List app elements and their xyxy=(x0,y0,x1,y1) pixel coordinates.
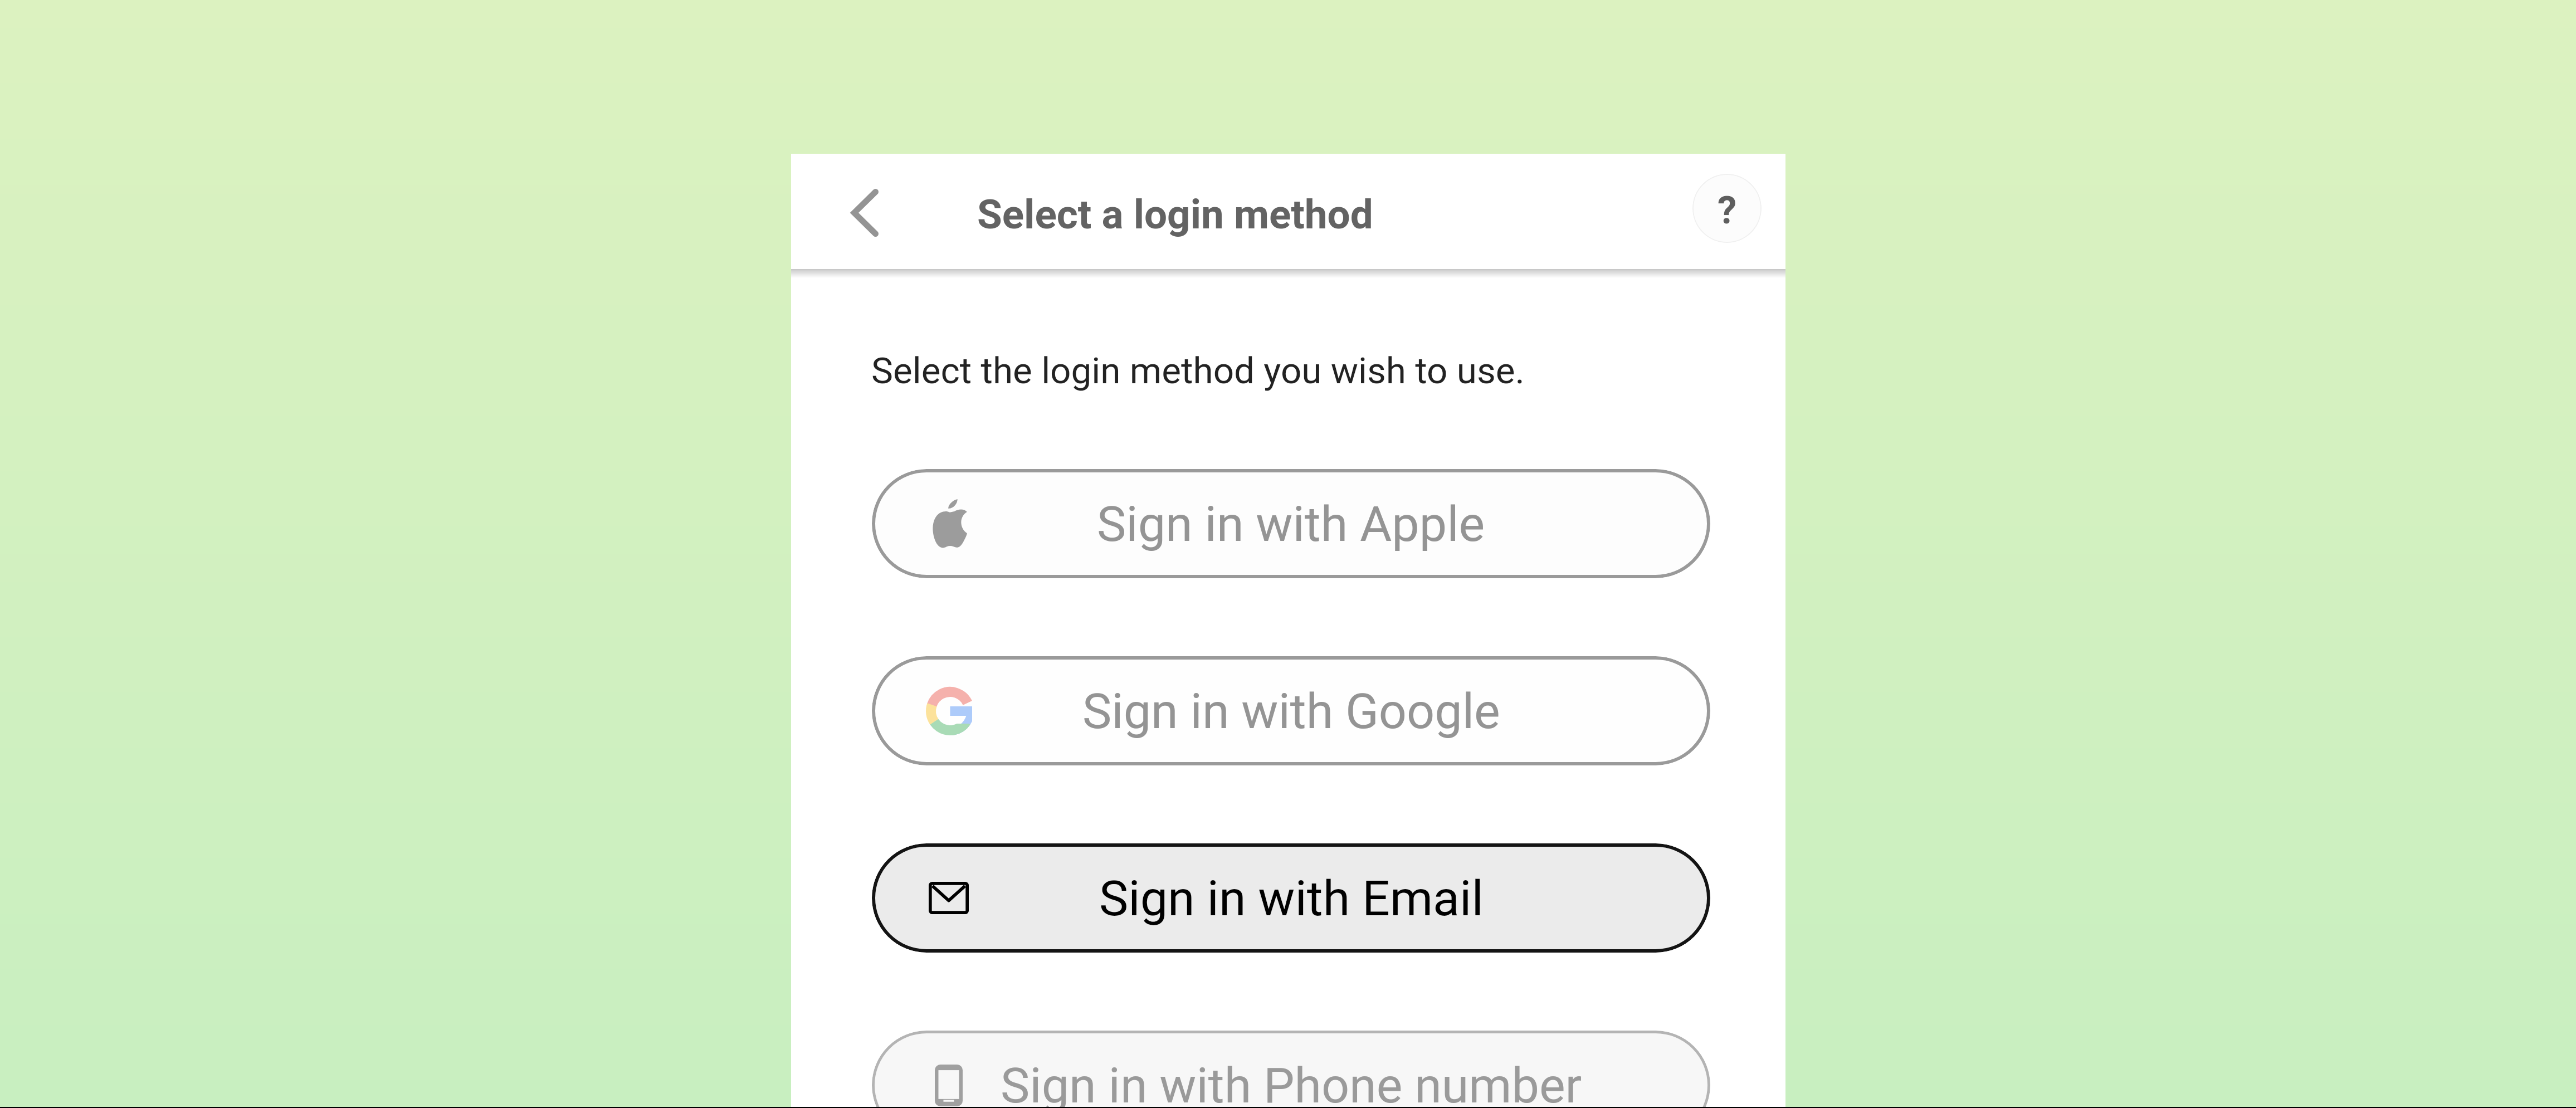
staticText: Sign in with Google xyxy=(1082,682,1500,740)
staticText: Sign in with Phone number xyxy=(1001,1057,1582,1108)
staticText: Sign in with Apple xyxy=(1097,495,1485,553)
staticText: Sign in with Email xyxy=(1099,870,1484,927)
button[interactable]: Help xyxy=(1692,174,1762,243)
button[interactable]: Back xyxy=(822,170,907,255)
button[interactable]: Sign in with Google xyxy=(872,656,1710,765)
staticText: Select a login method xyxy=(977,191,1373,238)
staticText: Select the login method you wish to use. xyxy=(871,349,1525,392)
staticText: ? xyxy=(1718,188,1737,233)
button[interactable]: Sign in with Email xyxy=(872,843,1710,953)
button[interactable]: Sign in with Phone number xyxy=(872,1031,1710,1108)
button[interactable]: Sign in with Apple xyxy=(872,469,1710,578)
